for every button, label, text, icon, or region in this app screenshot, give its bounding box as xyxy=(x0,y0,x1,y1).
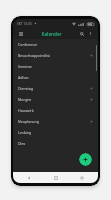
staticText: Morgen xyxy=(18,97,32,102)
staticText: Dienstag xyxy=(18,86,34,91)
staticText: Seminar xyxy=(18,64,33,69)
button[interactable]: Hauswirk xyxy=(13,105,98,116)
staticText: Kalender xyxy=(41,31,62,37)
button[interactable]: Back xyxy=(19,172,39,183)
button[interactable]: Seminar xyxy=(13,61,98,72)
button[interactable]: More options xyxy=(87,30,94,37)
button[interactable]: Search xyxy=(78,30,86,38)
staticText: Hauswirk xyxy=(18,108,34,113)
staticText: Dies xyxy=(18,141,26,146)
button[interactable]: Besuchsappointlist xyxy=(13,50,98,61)
staticText: Besuchsappointlist xyxy=(18,53,50,58)
button[interactable]: Adhoc xyxy=(13,72,98,83)
staticText: Lesbing xyxy=(18,130,32,135)
staticText: Adhoc xyxy=(18,75,29,80)
button[interactable]: Menu xyxy=(17,30,25,38)
button[interactable]: Morgen xyxy=(13,94,98,105)
button[interactable]: Dies xyxy=(13,138,98,149)
button[interactable]: Add event xyxy=(79,153,92,166)
button[interactable]: Lesbing xyxy=(13,127,98,138)
button[interactable]: Conference xyxy=(13,39,98,50)
button[interactable]: Dienstag xyxy=(13,83,98,94)
button[interactable]: Neuplanung xyxy=(13,116,98,127)
button[interactable]: Home xyxy=(46,172,66,183)
staticText: SKT 13:33 xyxy=(17,22,32,26)
button[interactable]: Recent apps xyxy=(72,172,92,183)
staticText: Neuplanung xyxy=(18,119,40,124)
staticText: Conference xyxy=(18,42,38,47)
